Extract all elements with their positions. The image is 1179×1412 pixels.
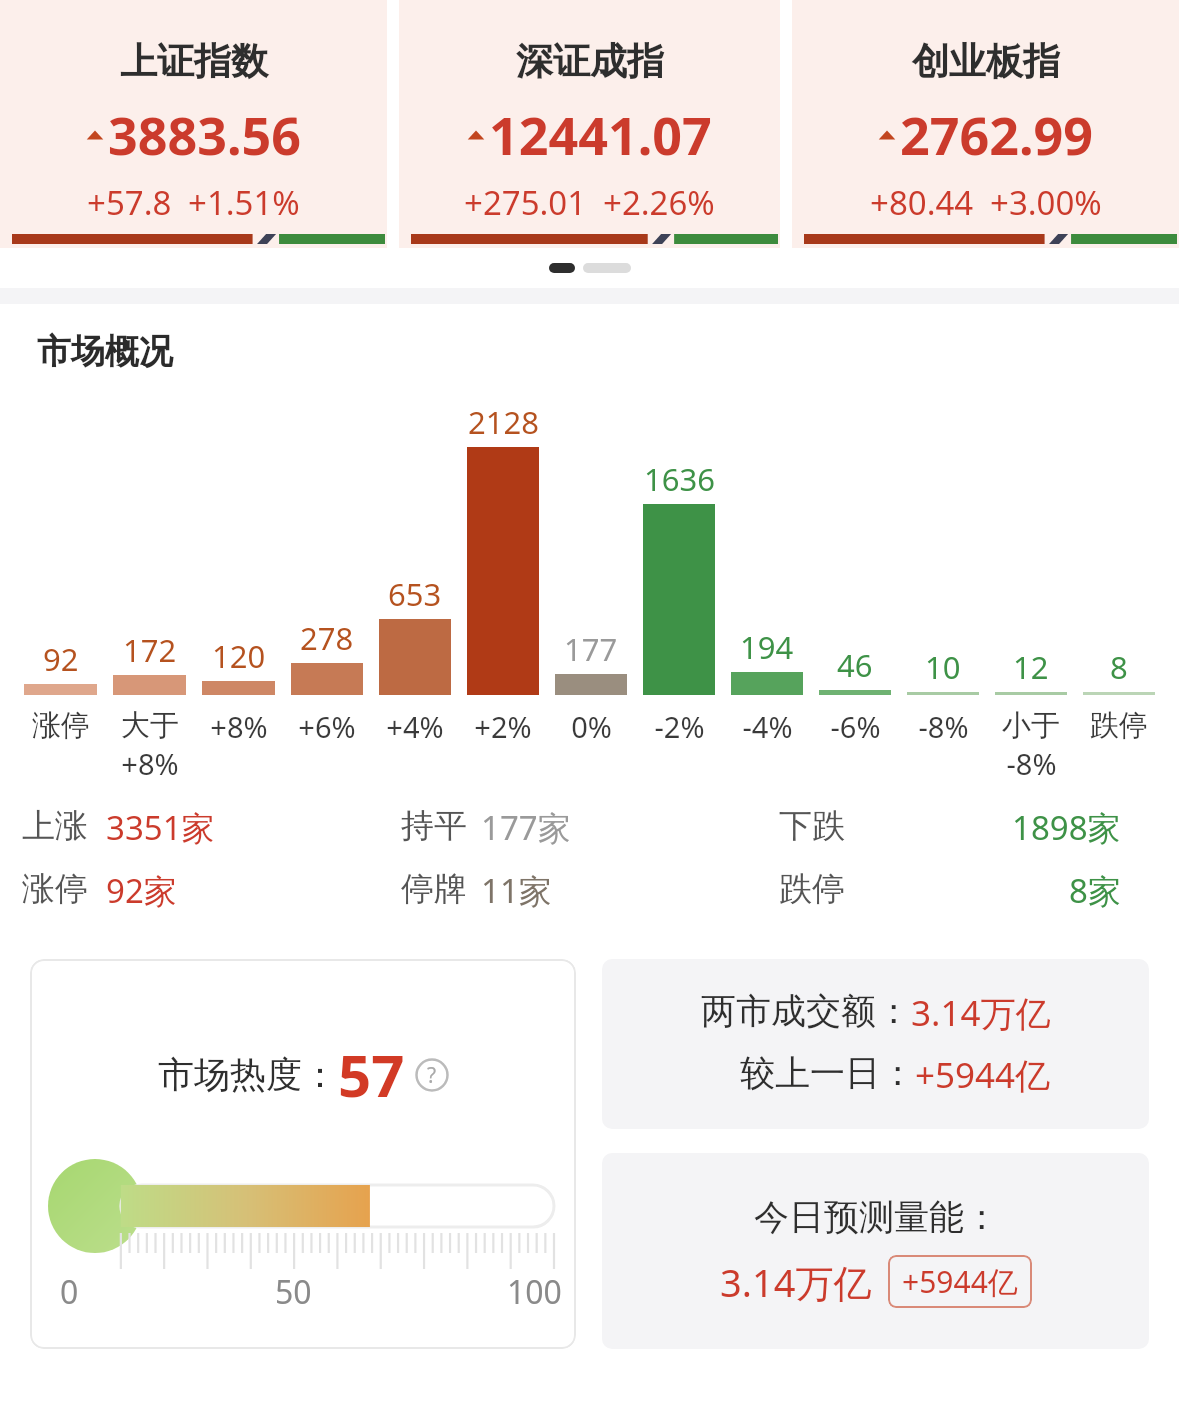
staticText: 100 xyxy=(507,1270,562,1314)
staticText: 3351家 xyxy=(106,805,215,850)
staticText: 1636 xyxy=(644,458,715,500)
staticText: +5944亿 xyxy=(915,1051,1051,1099)
staticText: 11家 xyxy=(481,868,552,913)
staticText: 12441.07 xyxy=(489,99,712,170)
staticText: 172 xyxy=(123,629,177,671)
staticText: 46 xyxy=(837,644,873,686)
button[interactable]: 上证指数 xyxy=(0,0,387,248)
staticText: +5944亿 xyxy=(902,1261,1018,1302)
button[interactable]: 两市成交额： xyxy=(602,959,1149,1129)
staticText: 较上一日： xyxy=(740,1051,915,1095)
staticText: 12 xyxy=(1013,646,1049,688)
staticText: 今日预测量能： xyxy=(754,1195,999,1239)
staticText: 2128 xyxy=(468,401,539,443)
staticText: +80.44 xyxy=(870,180,974,225)
staticText: 92家 xyxy=(106,868,177,913)
staticText: 跌停 xyxy=(779,868,845,910)
staticText: 停牌 xyxy=(401,868,467,910)
staticText: +6% xyxy=(298,707,356,746)
staticText: 持平 xyxy=(401,805,467,847)
staticText: +2.26% xyxy=(603,180,715,225)
staticText: 57 xyxy=(338,1035,405,1114)
button[interactable]: 今日预测量能： xyxy=(602,1153,1149,1349)
staticText: -2% xyxy=(654,707,705,746)
staticText: 1898家 xyxy=(1012,805,1121,850)
staticText: 下跌 xyxy=(779,805,845,847)
button[interactable]: 帮助 xyxy=(415,1058,449,1092)
staticText: 上证指数 xyxy=(120,38,268,85)
staticText: -8% xyxy=(1006,744,1057,781)
staticText: 177 xyxy=(564,628,618,670)
staticText: 小于 xyxy=(1002,707,1060,744)
button[interactable]: 创业板指 xyxy=(792,0,1179,248)
staticText: 深证成指 xyxy=(516,38,664,85)
staticText: 194 xyxy=(740,626,794,668)
staticText: 涨停 xyxy=(22,868,88,910)
staticText: 3.14万亿 xyxy=(720,1256,872,1308)
staticText: 创业板指 xyxy=(912,38,1060,85)
staticText: 3883.56 xyxy=(108,99,302,170)
staticText: 0% xyxy=(571,707,612,746)
staticText: 两市成交额： xyxy=(701,989,911,1033)
staticText: 3.14万亿 xyxy=(911,989,1051,1037)
button[interactable]: 市场热度： xyxy=(30,959,576,1349)
staticText: 50 xyxy=(275,1270,312,1314)
staticText: 上涨 xyxy=(22,805,88,847)
staticText: 8家 xyxy=(1069,868,1121,913)
staticText: 市场概况 xyxy=(37,330,173,373)
staticText: 653 xyxy=(388,573,442,615)
button[interactable]: 深证成指 xyxy=(399,0,780,248)
staticText: +1.51% xyxy=(188,180,300,225)
staticText: 278 xyxy=(300,617,354,659)
staticText: 92 xyxy=(43,638,79,680)
staticText: -6% xyxy=(830,707,881,746)
staticText: 0 xyxy=(60,1270,79,1314)
staticText: +8% xyxy=(210,707,268,746)
staticText: +57.8 xyxy=(87,180,172,225)
staticText: 177家 xyxy=(481,805,571,850)
staticText: 大于 xyxy=(121,707,179,744)
staticText: -8% xyxy=(918,707,969,746)
staticText: 8 xyxy=(1110,646,1128,688)
staticText: ? xyxy=(427,1061,437,1090)
staticText: 2762.99 xyxy=(900,99,1094,170)
staticText: +3.00% xyxy=(990,180,1102,225)
staticText: 涨停 xyxy=(32,707,90,744)
staticText: +2% xyxy=(474,707,532,746)
staticText: +275.01 xyxy=(464,180,587,225)
staticText: -4% xyxy=(742,707,793,746)
staticText: 120 xyxy=(212,635,266,677)
staticText: 跌停 xyxy=(1090,707,1148,744)
staticText: 10 xyxy=(925,646,961,688)
staticText: 市场热度： xyxy=(158,1052,338,1097)
staticText: +4% xyxy=(386,707,444,746)
staticText: +8% xyxy=(121,744,179,781)
